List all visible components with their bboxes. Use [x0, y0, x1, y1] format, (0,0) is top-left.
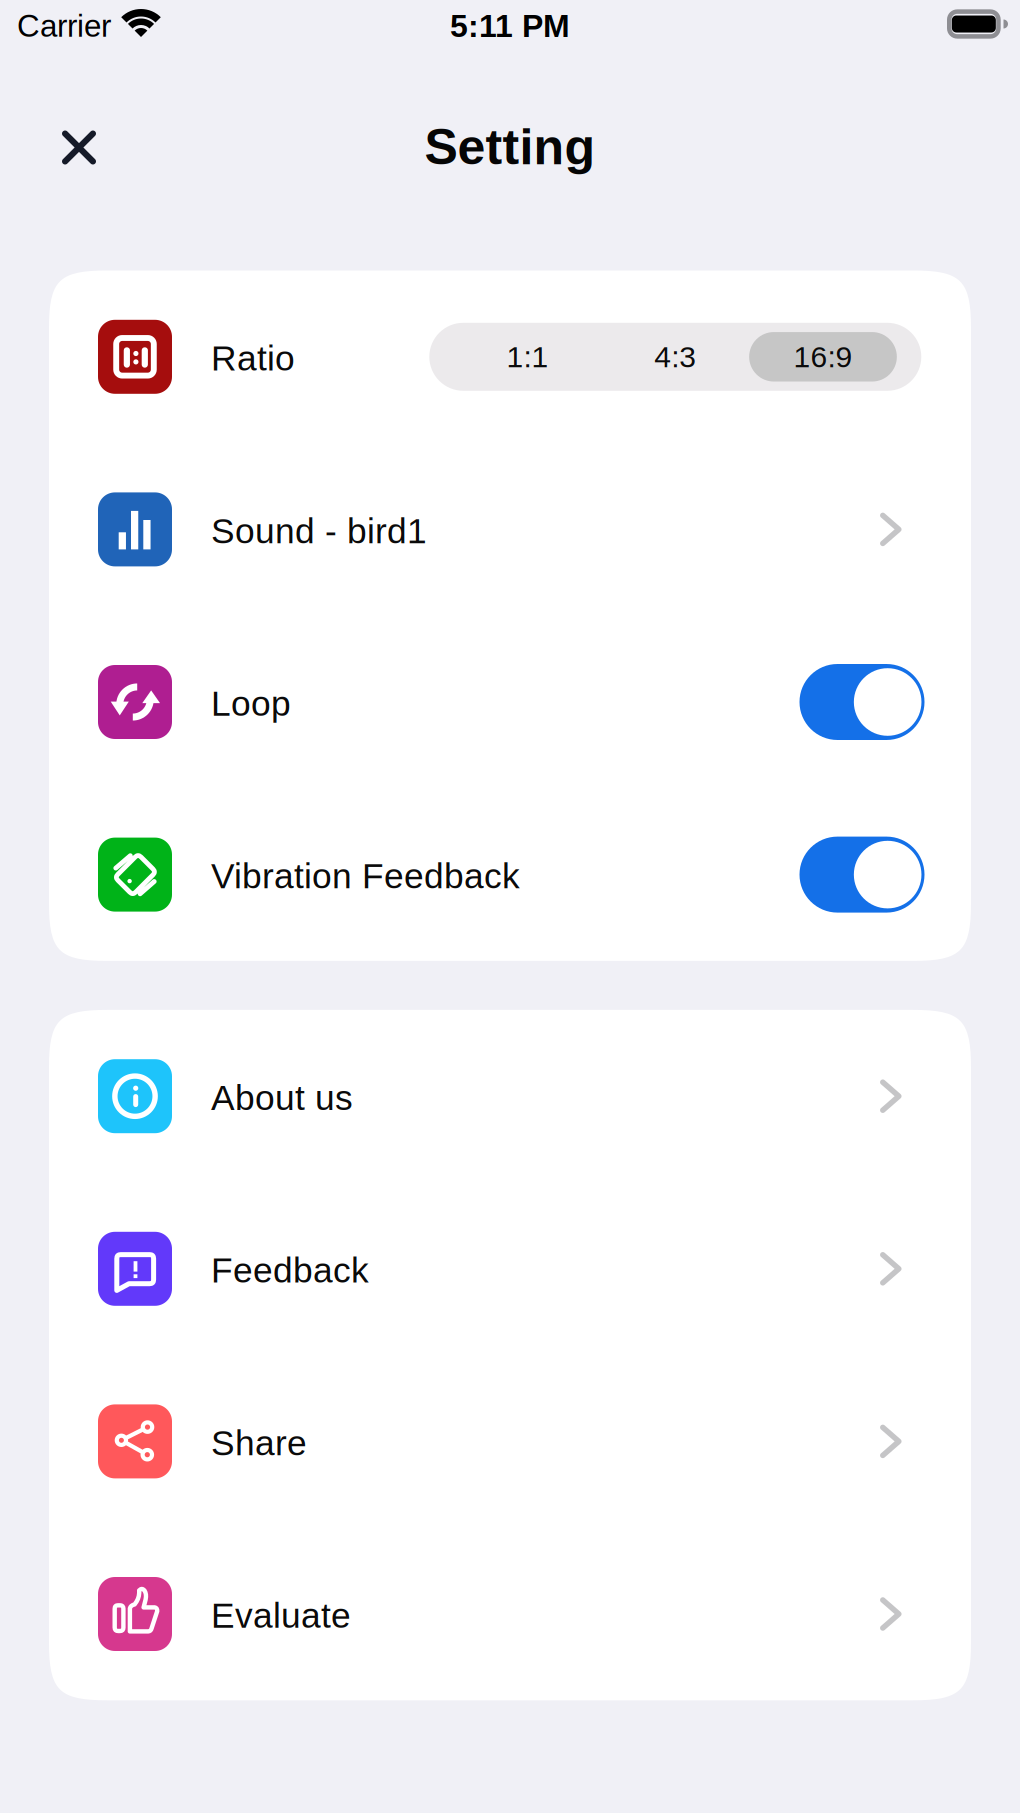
staticText: Ratio [211, 339, 295, 378]
staticText: 1:1 [507, 340, 549, 373]
button[interactable]: 4:3 [601, 332, 749, 382]
staticText: Share [211, 1423, 307, 1463]
button[interactable]: Feedback [49, 1182, 971, 1355]
staticText: Sound - bird1 [211, 511, 427, 551]
button[interactable]: Vibration Feedback [49, 788, 971, 961]
button[interactable]: Share [49, 1355, 971, 1528]
button[interactable]: 1:1 [454, 332, 601, 382]
button[interactable]: Loop, on [799, 664, 924, 740]
staticText: Loop [211, 684, 291, 723]
staticText: Feedback [211, 1251, 369, 1290]
staticText: Setting [424, 119, 595, 175]
staticText: About us [211, 1078, 353, 1117]
button[interactable]: Sound - bird1 [49, 443, 971, 616]
button[interactable]: Vibration Feedback, on [799, 837, 924, 913]
staticText: Evaluate [211, 1596, 351, 1635]
button[interactable]: Loop [49, 616, 971, 788]
staticText: Carrier [17, 8, 111, 43]
staticText: 16:9 [793, 340, 852, 373]
button[interactable]: Close [37, 104, 121, 188]
staticText: 4:3 [654, 340, 696, 373]
staticText: Vibration Feedback [211, 856, 520, 896]
button[interactable]: 16:9 [749, 332, 897, 382]
button[interactable]: About us [49, 1010, 971, 1182]
button[interactable]: Ratio [49, 270, 971, 443]
staticText: 5:11 PM [450, 8, 570, 44]
button[interactable]: Evaluate [49, 1528, 971, 1700]
